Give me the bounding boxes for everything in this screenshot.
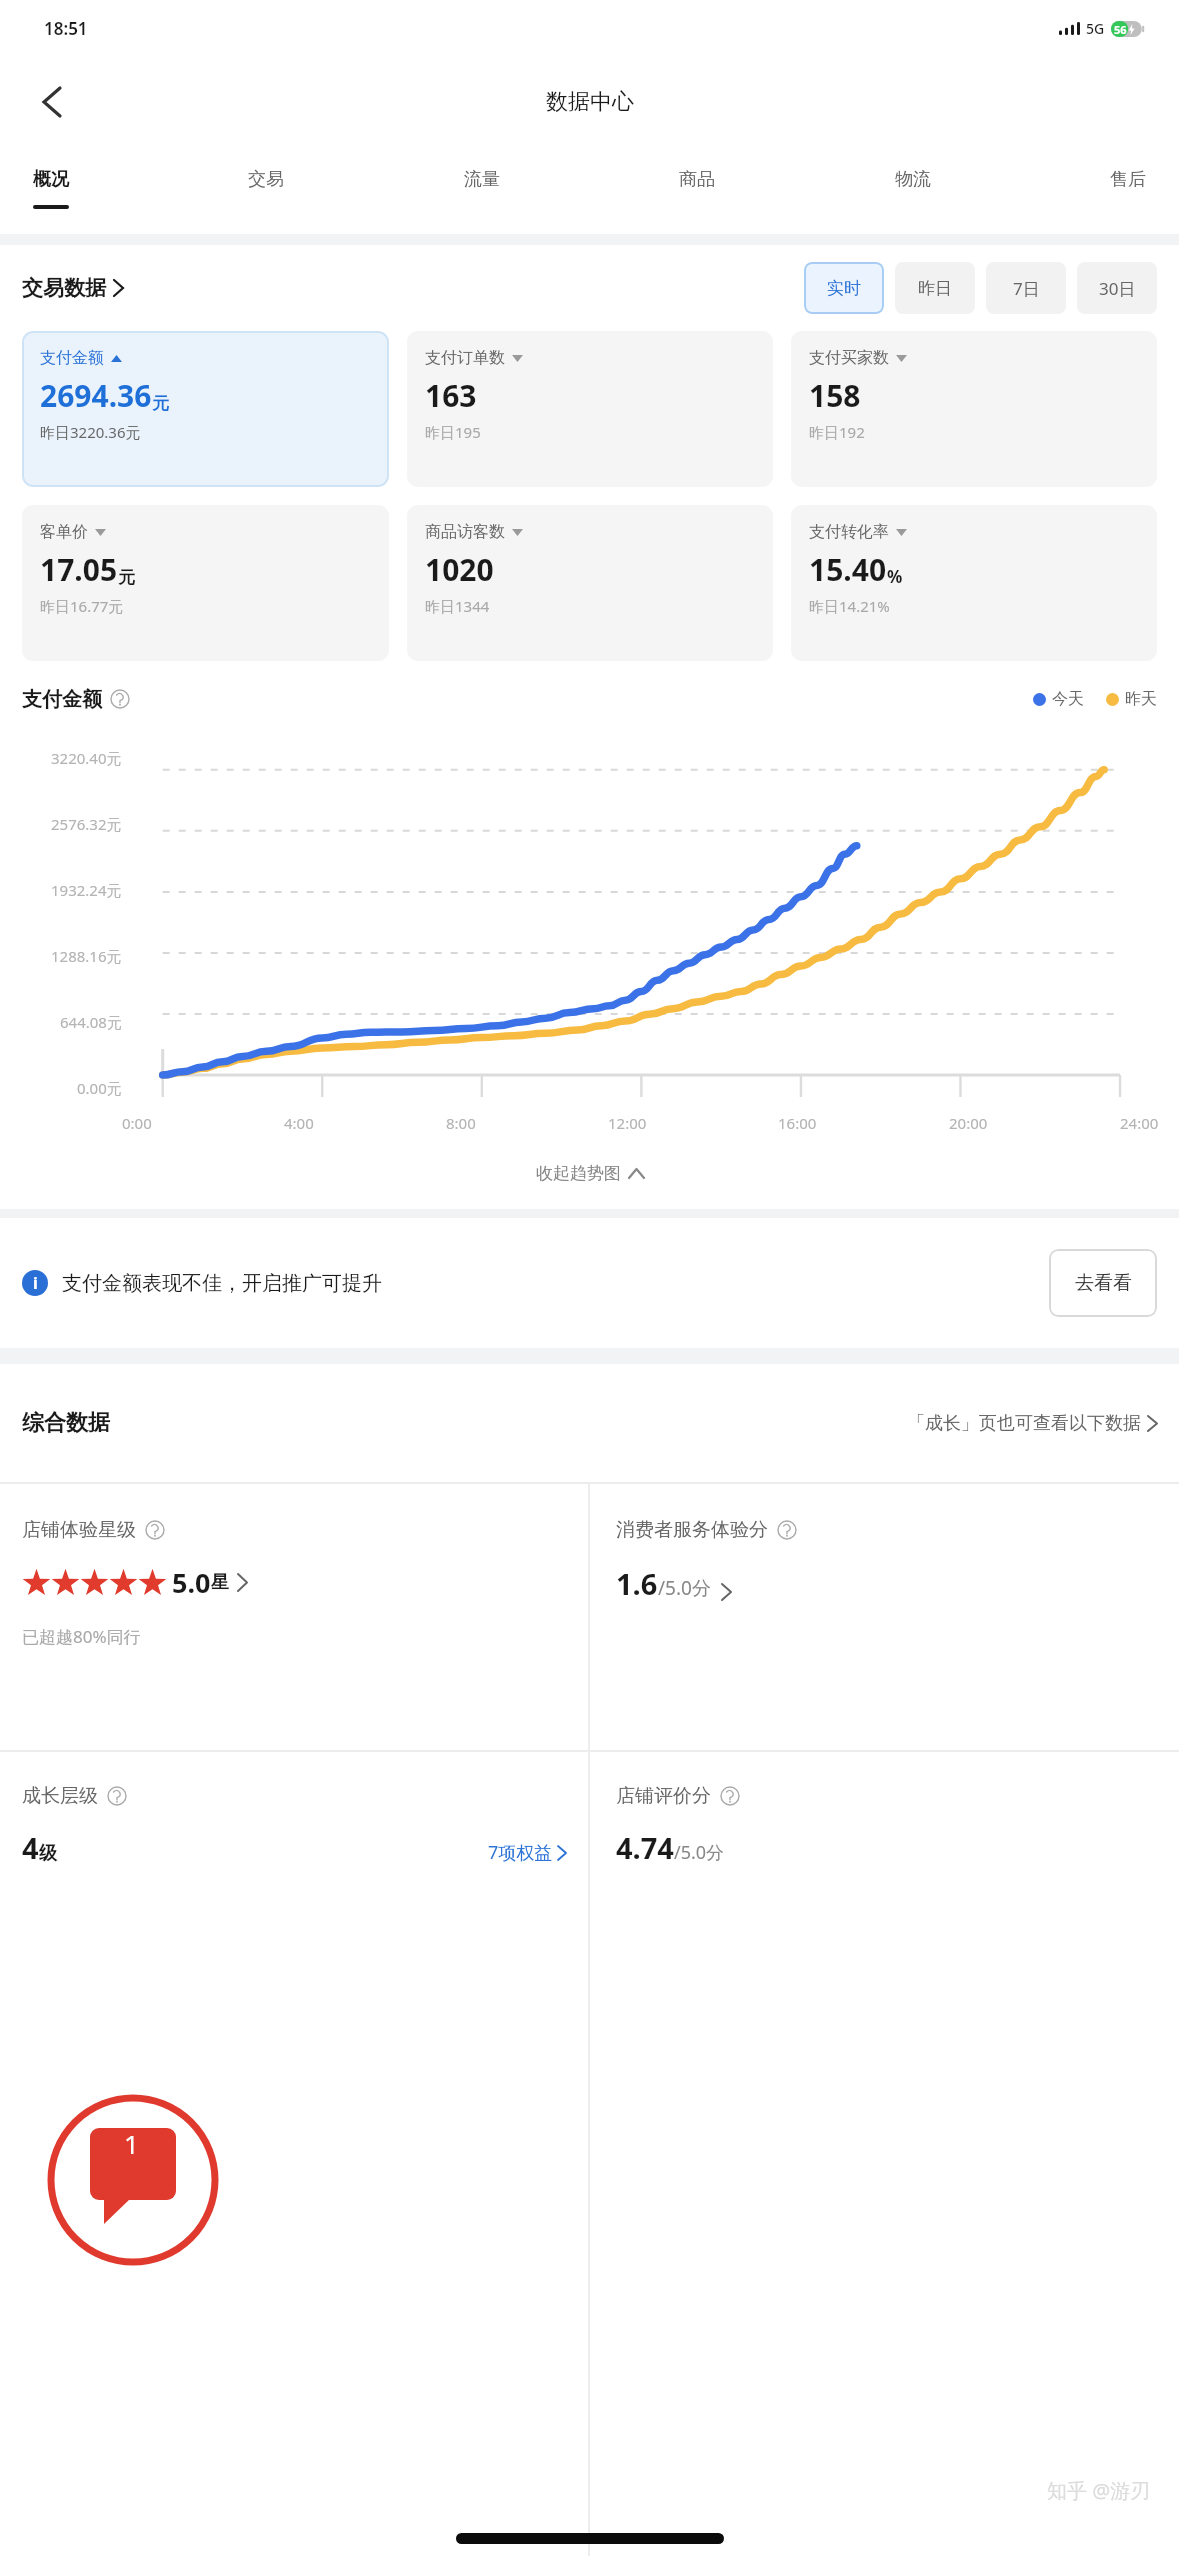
button[interactable]: 商品访客数 [407,505,773,661]
button[interactable]: 概况 [20,147,82,209]
staticText: 0:00 [122,1113,152,1133]
staticText: 17.05 [40,549,118,590]
staticText: 7项权益 [488,1840,553,1865]
staticText: 售后 [1110,168,1146,191]
staticText: 支付金额 [22,687,102,712]
staticText: 昨日1344 [425,596,490,616]
staticText: 流量 [464,168,500,191]
staticText: 24:00 [1120,1113,1159,1133]
staticText: 2576.32元 [51,814,122,834]
staticText: 5.0 [172,1564,211,1601]
button[interactable]: 流量 [451,147,513,209]
staticText: 支付订单数 [425,348,505,368]
staticText: 8:00 [446,1113,476,1133]
button[interactable]: 支付订单数 [407,331,773,487]
button[interactable]: 30日 [1077,262,1157,314]
staticText: 交易数据 [22,275,106,301]
staticText: 去看看 [1075,1271,1132,1295]
button[interactable]: 售后 [1097,147,1159,209]
button[interactable]: 支付买家数 [791,331,1157,487]
staticText: 1.6 [616,1564,658,1603]
staticText: 644.08元 [60,1012,122,1032]
staticText: 物流 [895,168,931,191]
staticText: 16:00 [778,1113,817,1133]
button[interactable]: 店铺体验星级 [0,1484,588,1750]
staticText: 5G [1086,19,1105,38]
staticText: 昨日195 [425,422,481,442]
staticText: 昨日14.21% [809,596,890,616]
staticText: 数据中心 [546,88,634,116]
staticText: 综合数据 [22,1409,110,1437]
button[interactable]: 物流 [882,147,944,209]
staticText: 12:00 [608,1113,647,1133]
staticText: 元 [152,393,169,414]
staticText: 店铺评价分 [616,1784,711,1808]
staticText: 已超越80%同行 [22,1625,141,1648]
staticText: /5.0分 [658,1575,711,1601]
staticText: i [33,1272,38,1294]
staticText: 7日 [1013,277,1040,300]
button[interactable]: 去看看 [1049,1249,1157,1317]
staticText: % [887,565,903,588]
staticText: 昨日192 [809,422,865,442]
staticText: 1288.16元 [51,946,122,966]
staticText: 客单价 [40,522,88,542]
button[interactable]: 商品 [666,147,728,209]
staticText: 店铺体验星级 [22,1518,136,1542]
staticText: 收起趋势图 [536,1163,621,1184]
button[interactable]: 店铺评价分 [590,1752,1179,2556]
staticText: 交易 [248,168,284,191]
staticText: 1020 [425,549,494,590]
button[interactable]: 「成长」页也可查看以下数据 [907,1412,1157,1435]
staticText: 商品访客数 [425,522,505,542]
staticText: 级 [39,1842,57,1865]
staticText: 4 [22,1828,39,1867]
staticText: 支付金额表现不佳，开启推广可提升 [62,1271,382,1296]
staticText: 56 [1114,22,1127,37]
staticText: 1 [124,2126,139,2161]
staticText: 昨日 [918,278,952,299]
button[interactable]: 成长层级 [0,1752,588,2556]
staticText: 18:51 [44,17,88,40]
staticText: 消费者服务体验分 [616,1518,768,1542]
staticText: 4.74 [616,1828,674,1867]
staticText: 158 [809,375,861,416]
staticText: 163 [425,375,477,416]
staticText: 星 [211,1571,229,1594]
staticText: 4:00 [284,1113,314,1133]
staticText: 成长层级 [22,1784,98,1808]
staticText: 昨日3220.36元 [40,422,141,442]
staticText: 元 [118,567,135,588]
staticText: 概况 [33,168,69,191]
button[interactable]: 返回 [24,74,80,130]
staticText: 2694.36 [40,375,152,416]
staticText: 实时 [827,278,861,299]
button[interactable]: 支付金额 [22,331,389,487]
button[interactable]: 7日 [986,262,1066,314]
staticText: 20:00 [949,1113,988,1133]
staticText: 昨天 [1125,689,1157,709]
staticText: 15.40 [809,549,887,590]
staticText: 知乎 @游刃 [1047,2477,1151,2504]
staticText: 支付转化率 [809,522,889,542]
staticText: 30日 [1099,277,1136,300]
staticText: 「成长」页也可查看以下数据 [907,1412,1141,1435]
button[interactable]: 实时 [804,262,884,314]
staticText: 今天 [1052,689,1084,709]
staticText: /5.0分 [674,1840,725,1865]
button[interactable]: 交易 [235,147,297,209]
staticText: 3220.40元 [51,748,122,768]
button[interactable]: 客单价 [22,505,389,661]
staticText: 0.00元 [77,1078,122,1098]
staticText: 1932.24元 [51,880,122,900]
button[interactable]: 交易数据 [22,275,123,301]
button[interactable]: 昨日 [895,262,975,314]
button[interactable]: 收起趋势图 [0,1137,1179,1209]
staticText: 昨日16.77元 [40,596,124,616]
button[interactable]: 支付转化率 [791,505,1157,661]
staticText: 支付金额 [40,348,104,368]
staticText: 支付买家数 [809,348,889,368]
button[interactable]: 消费者服务体验分 [590,1484,1179,1750]
staticText: 商品 [679,168,715,191]
